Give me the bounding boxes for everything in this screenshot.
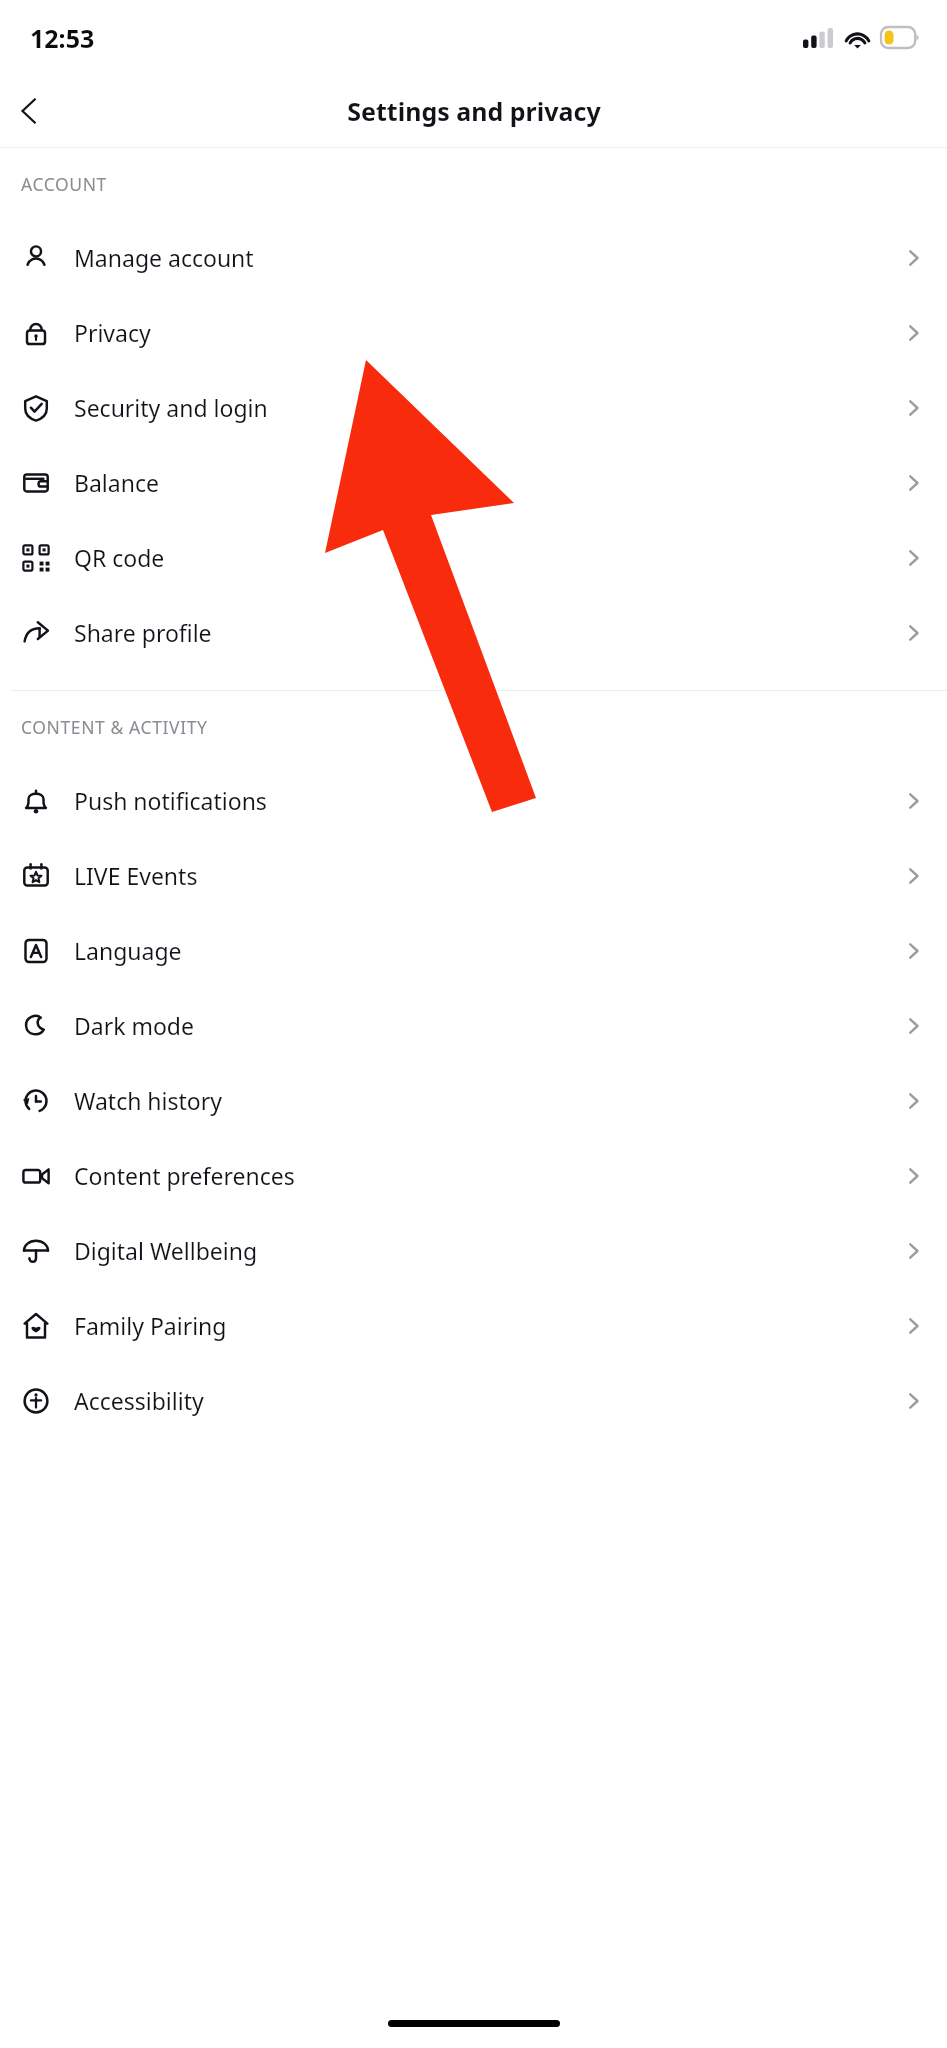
button[interactable]: Manage account [0, 220, 947, 295]
staticText: 12:53 [30, 21, 95, 55]
staticText: Digital Wellbeing [74, 1235, 903, 1266]
button[interactable]: QR code [0, 520, 947, 595]
staticText: Content preferences [74, 1160, 903, 1191]
button[interactable]: Share profile [0, 595, 947, 670]
button[interactable]: Accessibility [0, 1363, 947, 1438]
button[interactable]: Content preferences [0, 1138, 947, 1213]
button[interactable]: Family Pairing [0, 1288, 947, 1363]
button[interactable]: Back [0, 82, 58, 140]
button[interactable]: Privacy [0, 295, 947, 370]
button[interactable]: Balance [0, 445, 947, 520]
button[interactable]: Dark mode [0, 988, 947, 1063]
staticText: LIVE Events [74, 860, 903, 891]
staticText: Language [74, 935, 903, 966]
staticText: Push notifications [74, 785, 903, 816]
button[interactable]: Language [0, 913, 947, 988]
staticText: Family Pairing [74, 1310, 903, 1341]
staticText: Accessibility [74, 1385, 903, 1416]
staticText: QR code [74, 542, 903, 573]
staticText: ACCOUNT [21, 172, 107, 196]
staticText: Watch history [74, 1085, 903, 1116]
button[interactable]: Watch history [0, 1063, 947, 1138]
staticText: CONTENT & ACTIVITY [21, 715, 208, 739]
staticText: Settings and privacy [347, 94, 601, 128]
button[interactable]: Push notifications [0, 763, 947, 838]
staticText: Manage account [74, 242, 903, 273]
staticText: Privacy [74, 317, 903, 348]
button[interactable]: Security and login [0, 370, 947, 445]
staticText: Share profile [74, 617, 903, 648]
button[interactable]: Digital Wellbeing [0, 1213, 947, 1288]
staticText: Security and login [74, 392, 903, 423]
staticText: Balance [74, 467, 903, 498]
staticText: Dark mode [74, 1010, 903, 1041]
button[interactable]: LIVE Events [0, 838, 947, 913]
